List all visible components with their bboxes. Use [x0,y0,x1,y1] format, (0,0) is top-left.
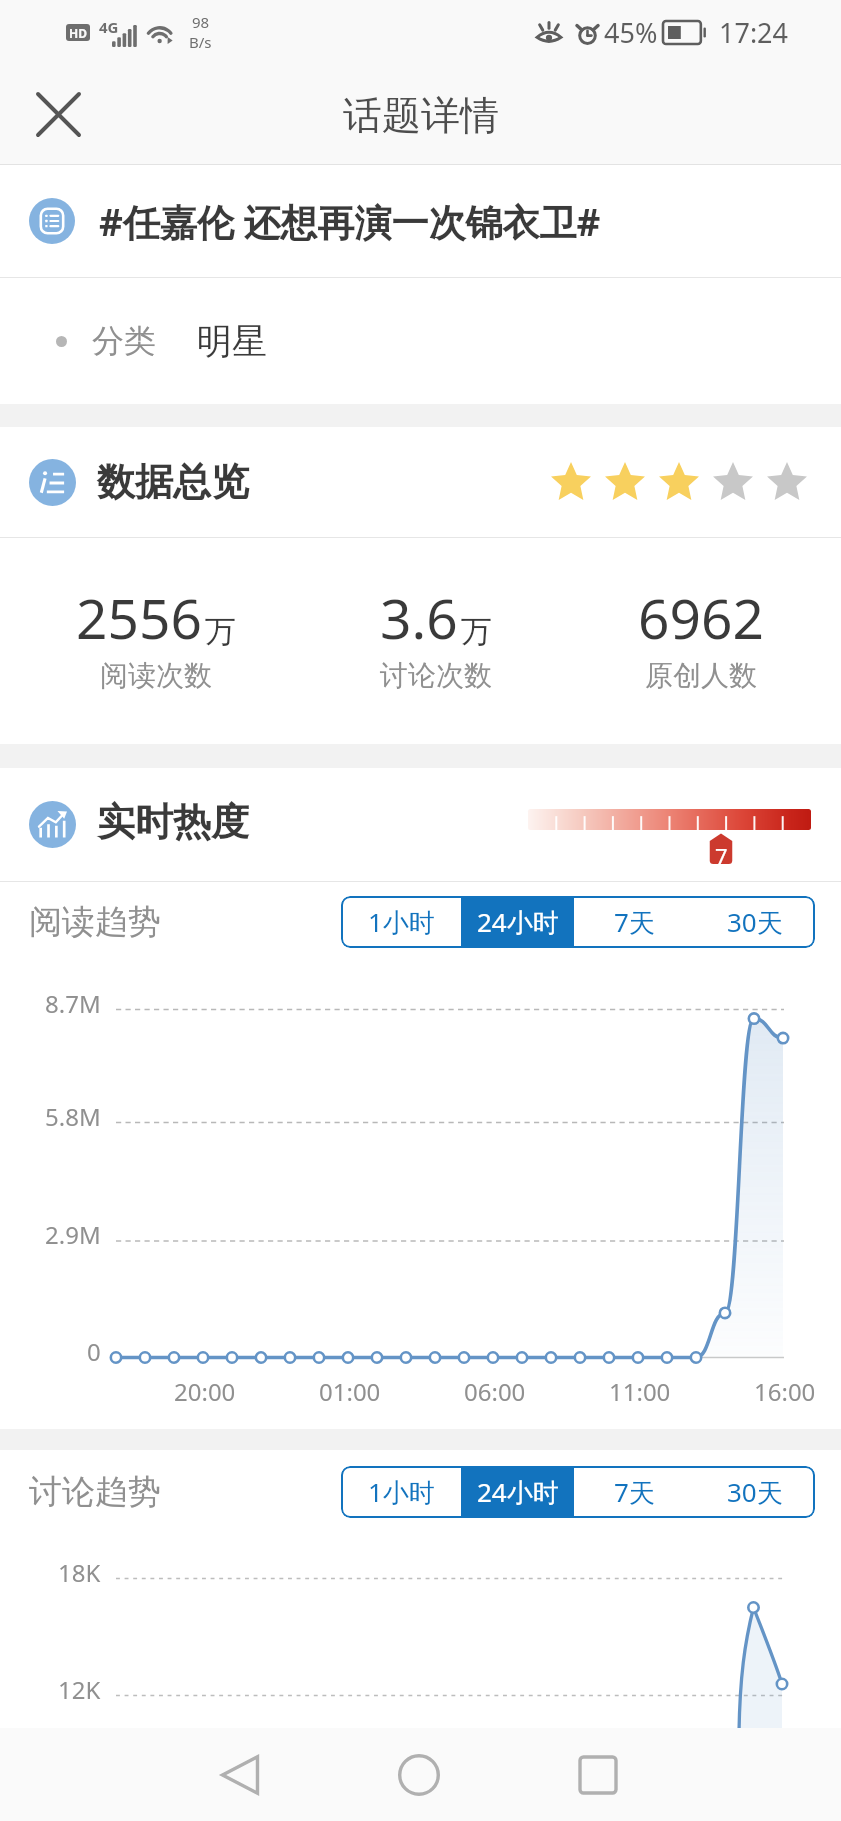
staticText: 1小时 [368,1474,435,1510]
staticText: 数据总览 [97,458,249,506]
staticText: 4G [99,17,119,37]
staticText: 万 [461,612,492,651]
staticText: 01:00 [319,1375,381,1408]
staticText: 30天 [727,904,783,940]
staticText: 8.7M [45,987,101,1020]
button[interactable]: 24小时 [461,1466,574,1518]
staticText: 7 [715,841,728,871]
staticText: 实时热度 [97,798,249,846]
staticText: 话题详情 [343,91,499,140]
button[interactable]: 分类 [0,278,841,404]
staticText: 万 [205,612,236,651]
staticText: 17:24 [719,14,789,51]
button[interactable]: 30天 [694,896,815,948]
staticText: HD [69,25,87,41]
staticText: 1小时 [368,904,435,940]
button[interactable]: 3.6 [306,538,566,744]
staticText: 5.8M [45,1100,101,1133]
staticText: 30天 [727,1474,783,1510]
button[interactable]: 6962 [571,538,831,744]
button[interactable]: 7天 [574,1466,694,1518]
staticText: 讨论次数 [380,658,492,693]
button[interactable]: 7天 [574,896,694,948]
staticText: 24小时 [477,1474,559,1510]
staticText: 45% [604,14,658,51]
staticText: 11:00 [609,1375,671,1408]
button[interactable]: Back [190,1728,290,1821]
staticText: 讨论趋势 [29,1471,161,1513]
button[interactable]: 1小时 [341,896,461,948]
staticText: 分类 [92,321,156,361]
staticText: 阅读趋势 [29,901,161,943]
staticText: 原创人数 [645,658,757,693]
staticText: 2.9M [45,1218,101,1251]
staticText: 18K [58,1556,101,1589]
button[interactable]: 24小时 [461,896,574,948]
staticText: 24小时 [477,904,559,940]
button[interactable]: 1小时 [341,1466,461,1518]
staticText: 7天 [614,904,655,940]
button[interactable]: Home [369,1728,469,1821]
staticText: 98 [192,12,210,32]
staticText: 16:00 [754,1375,816,1408]
button[interactable]: 2556 [26,538,286,744]
staticText: 6962 [638,580,764,655]
staticText: 明星 [197,319,267,363]
staticText: B/s [189,32,212,52]
staticText: 12K [58,1673,101,1706]
button[interactable]: Close [10,66,106,162]
staticText: 0 [87,1335,101,1368]
staticText: #任嘉伦 还想再演一次锦衣卫# [99,196,601,247]
button[interactable]: #任嘉伦 还想再演一次锦衣卫# [0,165,841,277]
staticText: 阅读次数 [100,658,212,693]
staticText: 20:00 [174,1375,236,1408]
staticText: 7天 [614,1474,655,1510]
staticText: 2556 [76,580,202,655]
button[interactable]: Recents [548,1728,648,1821]
staticText: 3.6 [380,580,458,655]
staticText: 06:00 [464,1375,526,1408]
button[interactable]: 30天 [694,1466,815,1518]
